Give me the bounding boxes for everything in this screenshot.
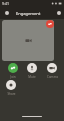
button[interactable]: More options (53, 7, 64, 18)
button[interactable]: End call (46, 20, 54, 28)
staticText: Mute (28, 75, 36, 79)
button[interactable]: Share screen (4, 80, 18, 96)
button[interactable]: Camera (45, 63, 59, 79)
staticText: Engagement (16, 11, 41, 16)
staticText: Camera (47, 75, 58, 79)
button[interactable]: Join call (6, 63, 20, 79)
button[interactable]: Mute (25, 63, 39, 79)
button[interactable]: Back (1, 7, 12, 18)
staticText: Join (10, 75, 16, 79)
staticText: Share (7, 92, 16, 96)
staticText: 9:41 (2, 1, 9, 6)
